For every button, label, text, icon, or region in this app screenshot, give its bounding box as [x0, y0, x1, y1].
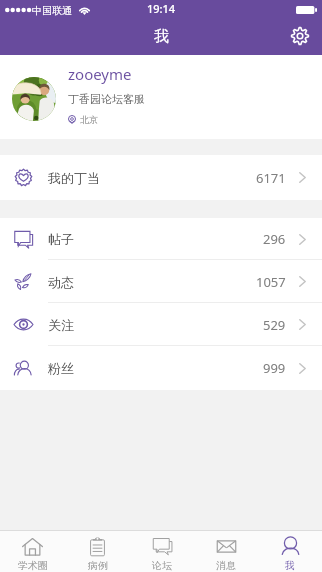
staticText: 丁香园论坛客服 — [68, 92, 145, 106]
staticText: 学术圈 — [18, 559, 48, 572]
staticText: 999 — [263, 359, 286, 377]
button[interactable]: Settings — [286, 22, 314, 50]
button[interactable]: 我的丁当 — [0, 155, 322, 200]
button[interactable]: 关注 — [0, 303, 322, 346]
button[interactable]: 帖子 — [0, 218, 322, 260]
staticText: 粉丝 — [48, 360, 74, 376]
staticText: 1057 — [256, 273, 286, 291]
button[interactable]: 论坛 — [130, 532, 194, 572]
staticText: 我 — [154, 27, 169, 46]
staticText: zooeyme — [68, 64, 132, 84]
staticText: 帖子 — [48, 231, 74, 247]
button[interactable]: 消息 — [194, 532, 258, 572]
staticText: 我的丁当 — [48, 170, 100, 186]
button[interactable]: zooeyme — [0, 55, 322, 139]
staticText: 我 — [285, 559, 295, 572]
button[interactable]: 粉丝 — [0, 346, 322, 390]
staticText: 19:14 — [147, 1, 176, 16]
staticText: 论坛 — [152, 559, 172, 572]
button[interactable]: 学术圈 — [0, 532, 65, 572]
staticText: 中国联通 — [32, 4, 72, 17]
staticText: 529 — [263, 316, 286, 334]
staticText: 关注 — [48, 317, 74, 333]
staticText: 消息 — [216, 559, 236, 572]
button[interactable]: 动态 — [0, 260, 322, 303]
button[interactable]: 病例 — [65, 532, 130, 572]
staticText: 北京 — [80, 114, 98, 125]
button[interactable]: 我 — [258, 532, 322, 572]
staticText: 296 — [263, 230, 286, 248]
staticText: 动态 — [48, 274, 74, 290]
staticText: 6171 — [256, 169, 286, 187]
staticText: 病例 — [88, 559, 108, 572]
